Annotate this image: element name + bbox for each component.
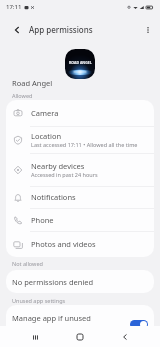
button[interactable]: Nearby devices [6, 154, 154, 186]
staticText: No permissions denied [12, 277, 94, 287]
button[interactable]: Manage app if unused toggle [130, 320, 148, 329]
button[interactable]: Camera [6, 100, 154, 126]
button[interactable]: Location [6, 127, 154, 153]
staticText: App permissions [29, 24, 93, 35]
staticText: Last accessed 17:11 • Allowed all the ti… [31, 141, 138, 148]
staticText: Road Angel [12, 78, 53, 88]
button[interactable]: More options [140, 22, 156, 38]
staticText: Photos and videos [31, 239, 96, 249]
staticText: Manage app if unused [12, 313, 91, 323]
staticText: 17:11 [6, 3, 22, 11]
staticText: Phone [31, 215, 54, 225]
button[interactable]: Recents [27, 329, 43, 345]
staticText: ROAD ANGEL [69, 60, 92, 65]
staticText: Camera [31, 108, 59, 118]
staticText: Accessed in past 24 hours [31, 171, 98, 178]
staticText: Unused app settings [12, 297, 66, 304]
button[interactable]: Notifications [6, 187, 154, 208]
staticText: Notifications [31, 192, 76, 202]
staticText: Location [31, 131, 62, 141]
button[interactable]: Back [117, 329, 133, 345]
button[interactable]: Photos and videos [6, 232, 154, 257]
staticText: Not allowed [12, 260, 43, 267]
button[interactable]: Phone [6, 209, 154, 231]
staticText: Nearby devices [31, 161, 85, 171]
button[interactable]: Home [72, 329, 88, 345]
button[interactable]: No permissions denied [6, 270, 154, 293]
button[interactable]: Navigate up [9, 22, 25, 38]
button[interactable]: Manage app if unused [6, 305, 154, 339]
staticText: Allowed [12, 92, 33, 99]
